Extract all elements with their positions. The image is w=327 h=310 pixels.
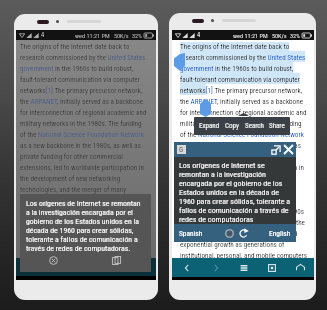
button[interactable]: Swap languages: [237, 227, 249, 239]
button[interactable]: Back: [172, 258, 201, 277]
staticText: The origins of the Internet date back to…: [20, 42, 149, 258]
staticText: Search: [245, 122, 264, 130]
button[interactable]: Home: [286, 258, 314, 277]
staticText: 50K/s: [114, 32, 129, 39]
button[interactable]: Tabs: [258, 258, 286, 277]
button[interactable]: Close: [46, 253, 60, 267]
staticText: Expand: [199, 122, 220, 130]
button[interactable]: Copy: [224, 122, 240, 130]
button[interactable]: Expand: [198, 122, 221, 130]
button[interactable]: Forward: [201, 258, 230, 277]
button[interactable]: Share: [268, 122, 286, 130]
staticText: 50K/s: [272, 32, 287, 39]
staticText: Copy: [225, 122, 239, 130]
button[interactable]: English: [269, 229, 291, 238]
staticText: wed 11:21 PM: [233, 32, 268, 39]
button[interactable]: Close: [282, 143, 295, 156]
staticText: The origins of the Internet date back to…: [180, 42, 308, 258]
button[interactable]: Spanish: [179, 229, 203, 238]
button[interactable]: Resize: [269, 143, 282, 156]
staticText: 4: [197, 31, 201, 39]
staticText: 4: [41, 31, 45, 39]
staticText: Spanish: [179, 229, 203, 238]
staticText: 32%: [290, 32, 301, 39]
button[interactable]: Search: [244, 122, 265, 130]
staticText: wed 11:21 PM: [75, 32, 110, 39]
staticText: English: [269, 229, 291, 238]
staticText: Los orígenes de Internet se remontan a l…: [179, 161, 291, 224]
button[interactable]: Listen: [223, 227, 235, 239]
button[interactable]: Copy: [109, 253, 123, 267]
staticText: G: [179, 146, 184, 154]
staticText: Los orígenes de Internet se remontan a l…: [26, 199, 145, 253]
staticText: Share: [269, 122, 285, 130]
button[interactable]: Menu: [230, 258, 258, 277]
staticText: 32%: [132, 32, 143, 39]
